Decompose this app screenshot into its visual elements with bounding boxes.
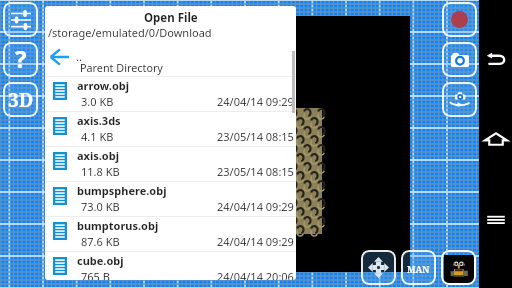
- staticText: ?: [15, 42, 27, 75]
- staticText: bumptorus.obj: [77, 218, 159, 233]
- button[interactable]: Pan: [361, 250, 396, 285]
- button[interactable]: Help: [3, 42, 38, 77]
- staticText: 87.6 KB: [81, 234, 120, 249]
- staticText: Parent Directory: [80, 60, 163, 75]
- staticText: 4.1 KB: [81, 129, 114, 144]
- staticText: 23/05/14 08:15: [217, 129, 294, 144]
- staticText: 24/04/14 20:06: [217, 269, 294, 280]
- staticText: 24/04/14 09:29: [217, 94, 294, 109]
- staticText: 73.0 KB: [81, 199, 120, 214]
- button[interactable]: 3D mode: [3, 82, 38, 117]
- button[interactable]: Recent apps: [479, 202, 512, 235]
- staticText: 3.0 KB: [81, 94, 114, 109]
- staticText: bumpsphere.obj: [77, 183, 167, 198]
- staticText: MAN: [407, 263, 430, 275]
- staticText: cube.obj: [77, 253, 124, 268]
- button[interactable]: Back: [479, 42, 512, 75]
- button[interactable]: Take photo: [442, 42, 477, 77]
- staticText: axis.obj: [77, 148, 119, 163]
- staticText: /storage/emulated/0/Download: [48, 25, 212, 40]
- staticText: 765 B: [81, 269, 110, 280]
- button[interactable]: Record: [442, 2, 477, 37]
- button[interactable]: bumpsphere.obj: [45, 182, 296, 217]
- staticText: 23/05/14 08:15: [217, 164, 294, 179]
- staticText: ..: [76, 49, 82, 64]
- button[interactable]: cube.obj: [45, 252, 296, 280]
- staticText: 11.8 KB: [81, 164, 120, 179]
- button[interactable]: axis.obj: [45, 147, 296, 182]
- button[interactable]: Home: [479, 122, 512, 155]
- button[interactable]: MAN: [401, 250, 436, 285]
- button[interactable]: bumptorus.obj: [45, 217, 296, 252]
- button[interactable]: arrow.obj: [45, 77, 296, 112]
- button[interactable]: axis.3ds: [45, 112, 296, 147]
- staticText: 24/04/14 09:29: [217, 199, 294, 214]
- staticText: 24/04/14 09:29: [217, 234, 294, 249]
- button[interactable]: 360 photo: [442, 82, 477, 117]
- staticText: 3D: [8, 87, 34, 113]
- button[interactable]: Model thumbnail: [441, 250, 476, 285]
- staticText: axis.3ds: [77, 113, 121, 128]
- staticText: Open File: [144, 10, 198, 26]
- button[interactable]: Settings: [3, 2, 38, 37]
- button[interactable]: ..: [45, 44, 296, 77]
- staticText: arrow.obj: [77, 78, 130, 93]
